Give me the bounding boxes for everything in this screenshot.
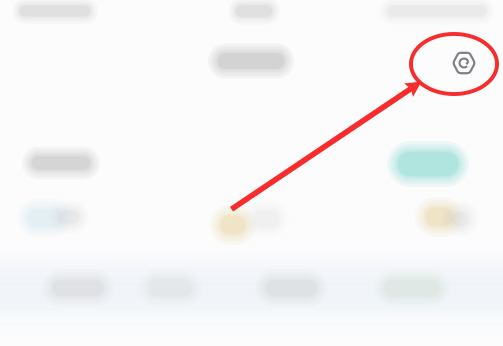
button[interactable]: Settings xyxy=(452,51,476,75)
